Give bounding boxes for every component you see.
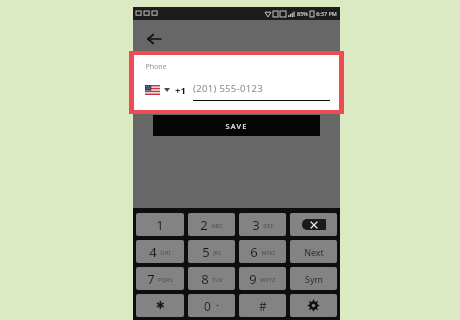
button[interactable]: SAVE <box>153 115 320 136</box>
button[interactable]: 8 <box>188 267 235 290</box>
staticText: (201) 555-0123 <box>193 82 263 95</box>
button[interactable]: 6 <box>239 240 286 263</box>
staticText: 85% <box>297 10 308 17</box>
button[interactable]: ✱ <box>136 294 184 317</box>
staticText: 7 <box>147 270 155 288</box>
button[interactable]: 3 <box>239 213 286 236</box>
button[interactable]: # <box>239 294 286 317</box>
staticText: 5 <box>202 243 210 261</box>
staticText: 3 <box>252 216 260 234</box>
button[interactable]: 7 <box>136 267 184 290</box>
staticText: 4 <box>149 243 157 261</box>
staticText: GHI <box>160 249 171 256</box>
other: Keyboard settings <box>307 299 320 312</box>
button[interactable]: Backspace <box>290 213 337 236</box>
staticText: 0 <box>204 298 211 314</box>
button[interactable]: 0 <box>188 294 235 317</box>
staticText: +1 <box>175 84 186 97</box>
staticText: ✱ <box>155 299 165 312</box>
staticText: # <box>259 298 267 314</box>
staticText: DEF <box>263 222 274 229</box>
other: Backspace <box>302 219 326 230</box>
button[interactable]: 4 <box>136 240 184 263</box>
button[interactable]: Back <box>140 25 168 53</box>
staticText: Phone <box>145 62 167 72</box>
staticText: TUV <box>212 276 223 283</box>
button[interactable]: 5 <box>188 240 235 263</box>
button[interactable]: Next <box>290 240 337 263</box>
staticText: MNO <box>261 249 276 256</box>
staticText: JKL <box>213 249 222 256</box>
button[interactable]: Select country code <box>145 85 170 95</box>
staticText: 1 <box>156 216 164 234</box>
staticText: SAVE <box>225 121 248 131</box>
button[interactable]: 2 <box>188 213 235 236</box>
staticText: 2 <box>200 216 208 234</box>
staticText: Next <box>304 246 324 258</box>
button[interactable]: 1 <box>136 213 184 236</box>
staticText: + <box>215 301 220 311</box>
staticText: PQRS <box>158 276 173 283</box>
button[interactable]: Sym <box>290 267 337 290</box>
staticText: 8 <box>201 270 209 288</box>
button[interactable]: Keyboard settings <box>290 294 337 317</box>
staticText: Sym <box>305 273 323 285</box>
staticText: ABC <box>211 222 223 229</box>
staticText: 6:37 PM <box>316 10 337 17</box>
staticText: 6 <box>250 243 258 261</box>
staticText: WXYZ <box>260 276 276 283</box>
button[interactable]: 9 <box>239 267 286 290</box>
staticText: 9 <box>249 270 257 288</box>
